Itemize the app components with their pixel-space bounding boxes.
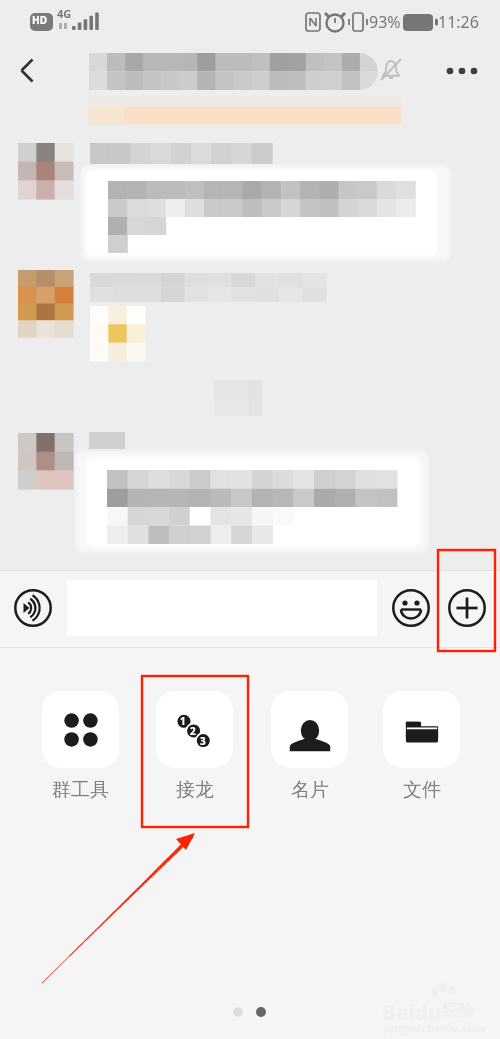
button[interactable]: Voice message [9,584,57,632]
button[interactable]: 名片 [271,691,348,802]
button[interactable]: More options [438,50,480,92]
staticText: 4G [57,6,72,21]
staticText: 群工具 [52,778,109,802]
staticText: 2 [190,724,196,738]
button[interactable]: 1 [156,691,233,802]
staticText: 11:26 [438,11,479,33]
staticText: 93% [369,11,401,33]
button[interactable]: Back [5,44,51,90]
button[interactable]: 文件 [383,691,460,802]
staticText: 1 [180,714,186,728]
staticText: 3 [200,734,206,748]
staticText: 接龙 [176,778,214,802]
button[interactable]: Emoji [387,584,435,632]
button[interactable]: 群工具 [42,691,119,802]
staticText: 文件 [403,778,441,802]
staticText: 名片 [291,778,329,802]
staticText: HD [32,13,47,27]
button[interactable]: More functions [443,584,491,632]
